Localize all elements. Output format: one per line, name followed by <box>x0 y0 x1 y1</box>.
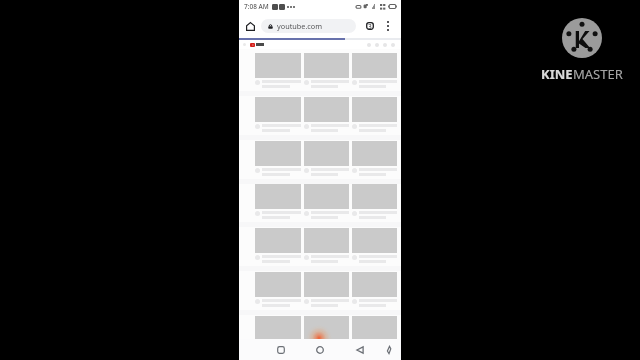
button[interactable]: Recent apps <box>273 342 289 358</box>
staticText: MASTER <box>573 65 623 83</box>
button[interactable] <box>352 272 397 307</box>
button[interactable] <box>255 228 301 263</box>
staticText: 3 <box>368 22 372 30</box>
button[interactable] <box>255 316 301 351</box>
button[interactable] <box>352 184 397 219</box>
button[interactable] <box>255 53 301 88</box>
button[interactable] <box>352 97 397 132</box>
button[interactable] <box>352 53 397 88</box>
button[interactable] <box>255 141 301 176</box>
button[interactable] <box>255 97 301 132</box>
button[interactable]: Back <box>352 342 368 358</box>
button[interactable] <box>304 316 349 351</box>
button[interactable] <box>304 184 349 219</box>
button[interactable] <box>352 228 397 263</box>
button[interactable] <box>304 228 349 263</box>
button[interactable] <box>304 141 349 176</box>
button[interactable] <box>304 97 349 132</box>
button[interactable]: More options <box>381 19 395 33</box>
button[interactable] <box>304 272 349 307</box>
button[interactable]: S Pen <box>381 342 397 358</box>
button[interactable]: Home <box>243 19 257 33</box>
button[interactable] <box>255 272 301 307</box>
button[interactable] <box>255 184 301 219</box>
button[interactable] <box>304 53 349 88</box>
button[interactable]: youtube.com <box>268 19 356 33</box>
staticText: 7:08 AM <box>244 2 269 11</box>
button[interactable] <box>352 141 397 176</box>
button[interactable]: Home <box>312 342 328 358</box>
staticText: youtube.com <box>277 21 323 31</box>
staticText: KINE <box>541 65 573 83</box>
button[interactable] <box>352 316 397 351</box>
button[interactable]: Tabs <box>363 19 377 33</box>
